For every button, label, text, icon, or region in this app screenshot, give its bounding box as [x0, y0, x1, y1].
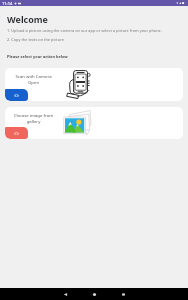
staticText: 11:14: [2, 1, 13, 6]
staticText: 1. Upload a picture using the camera on …: [7, 28, 162, 33]
button[interactable]: Back: [51, 288, 80, 300]
staticText: Choose image from gallery: [7, 112, 60, 124]
button[interactable]: Scan with Camera Open: [5, 68, 183, 101]
button[interactable]: Choose image from gallery: [5, 107, 183, 139]
staticText: Scan with Camera Open: [7, 73, 60, 85]
button[interactable]: Choose image from gallery: [5, 127, 28, 139]
staticText: 2. Copy the texts on the picture: [7, 37, 64, 42]
staticText: Please select your action below: [7, 54, 68, 59]
button[interactable]: Recent apps: [109, 288, 138, 300]
button[interactable]: Home: [80, 288, 109, 300]
staticText: Welcome: [7, 13, 48, 25]
button[interactable]: Scan with camera: [5, 89, 28, 101]
